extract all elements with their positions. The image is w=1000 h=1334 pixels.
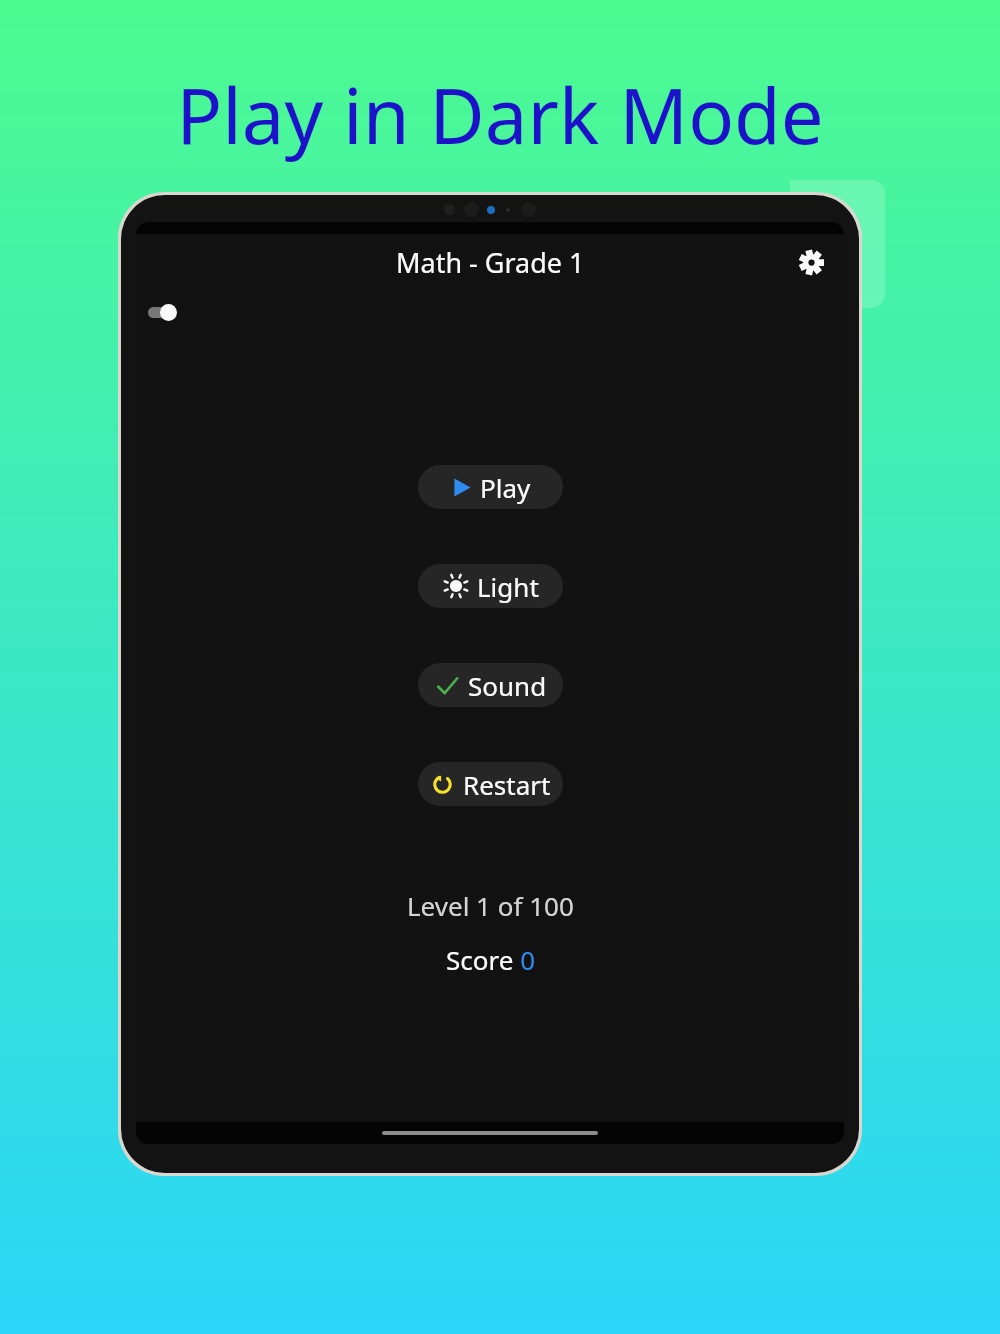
button[interactable]: Sound — [418, 663, 563, 707]
staticText: Play — [480, 470, 531, 505]
staticText: Sound — [468, 668, 547, 703]
staticText: Score 0 — [446, 942, 535, 977]
button[interactable]: Restart — [418, 762, 563, 806]
button[interactable]: Light — [418, 564, 563, 608]
button[interactable]: Settings — [790, 241, 832, 283]
staticText: Math - Grade 1 — [396, 244, 585, 281]
staticText: Play in Dark Mode — [0, 63, 1000, 167]
button[interactable]: Play — [418, 465, 563, 509]
staticText: Level 1 of 100 — [407, 888, 574, 923]
button[interactable]: Toggle setting — [146, 302, 182, 322]
staticText: Restart — [463, 767, 551, 802]
staticText: Light — [477, 569, 539, 604]
